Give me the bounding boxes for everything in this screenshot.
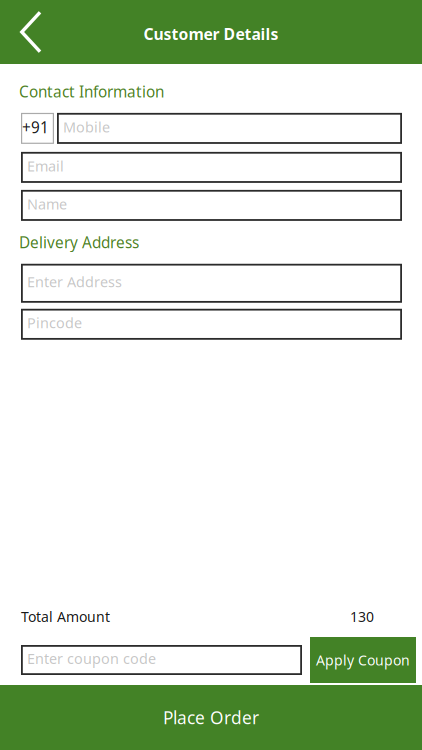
staticText: +91 bbox=[22, 117, 49, 138]
staticText: 130 bbox=[350, 607, 374, 626]
button[interactable]: Pincode bbox=[21, 309, 402, 340]
staticText: Place Order bbox=[163, 706, 259, 729]
staticText: Customer Details bbox=[143, 23, 278, 45]
button[interactable]: Back bbox=[0, 0, 62, 64]
staticText: Email bbox=[27, 156, 64, 176]
staticText: Pincode bbox=[27, 313, 82, 333]
button[interactable]: Apply Coupon bbox=[310, 637, 416, 683]
button[interactable]: Place Order bbox=[0, 685, 422, 750]
staticText: Contact Information bbox=[19, 81, 164, 102]
staticText: Total Amount bbox=[21, 607, 110, 626]
staticText: Delivery Address bbox=[19, 232, 139, 253]
staticText: Enter coupon code bbox=[27, 649, 156, 668]
staticText: Apply Coupon bbox=[316, 650, 410, 670]
staticText: Mobile bbox=[63, 117, 110, 137]
staticText: Enter Address bbox=[27, 272, 122, 292]
button[interactable]: Mobile bbox=[57, 113, 402, 144]
button[interactable]: Enter coupon code bbox=[21, 645, 302, 675]
staticText: Name bbox=[27, 194, 67, 214]
button[interactable]: Name bbox=[21, 190, 402, 221]
button[interactable]: Enter Address bbox=[21, 264, 402, 303]
button[interactable]: Email bbox=[21, 152, 402, 183]
